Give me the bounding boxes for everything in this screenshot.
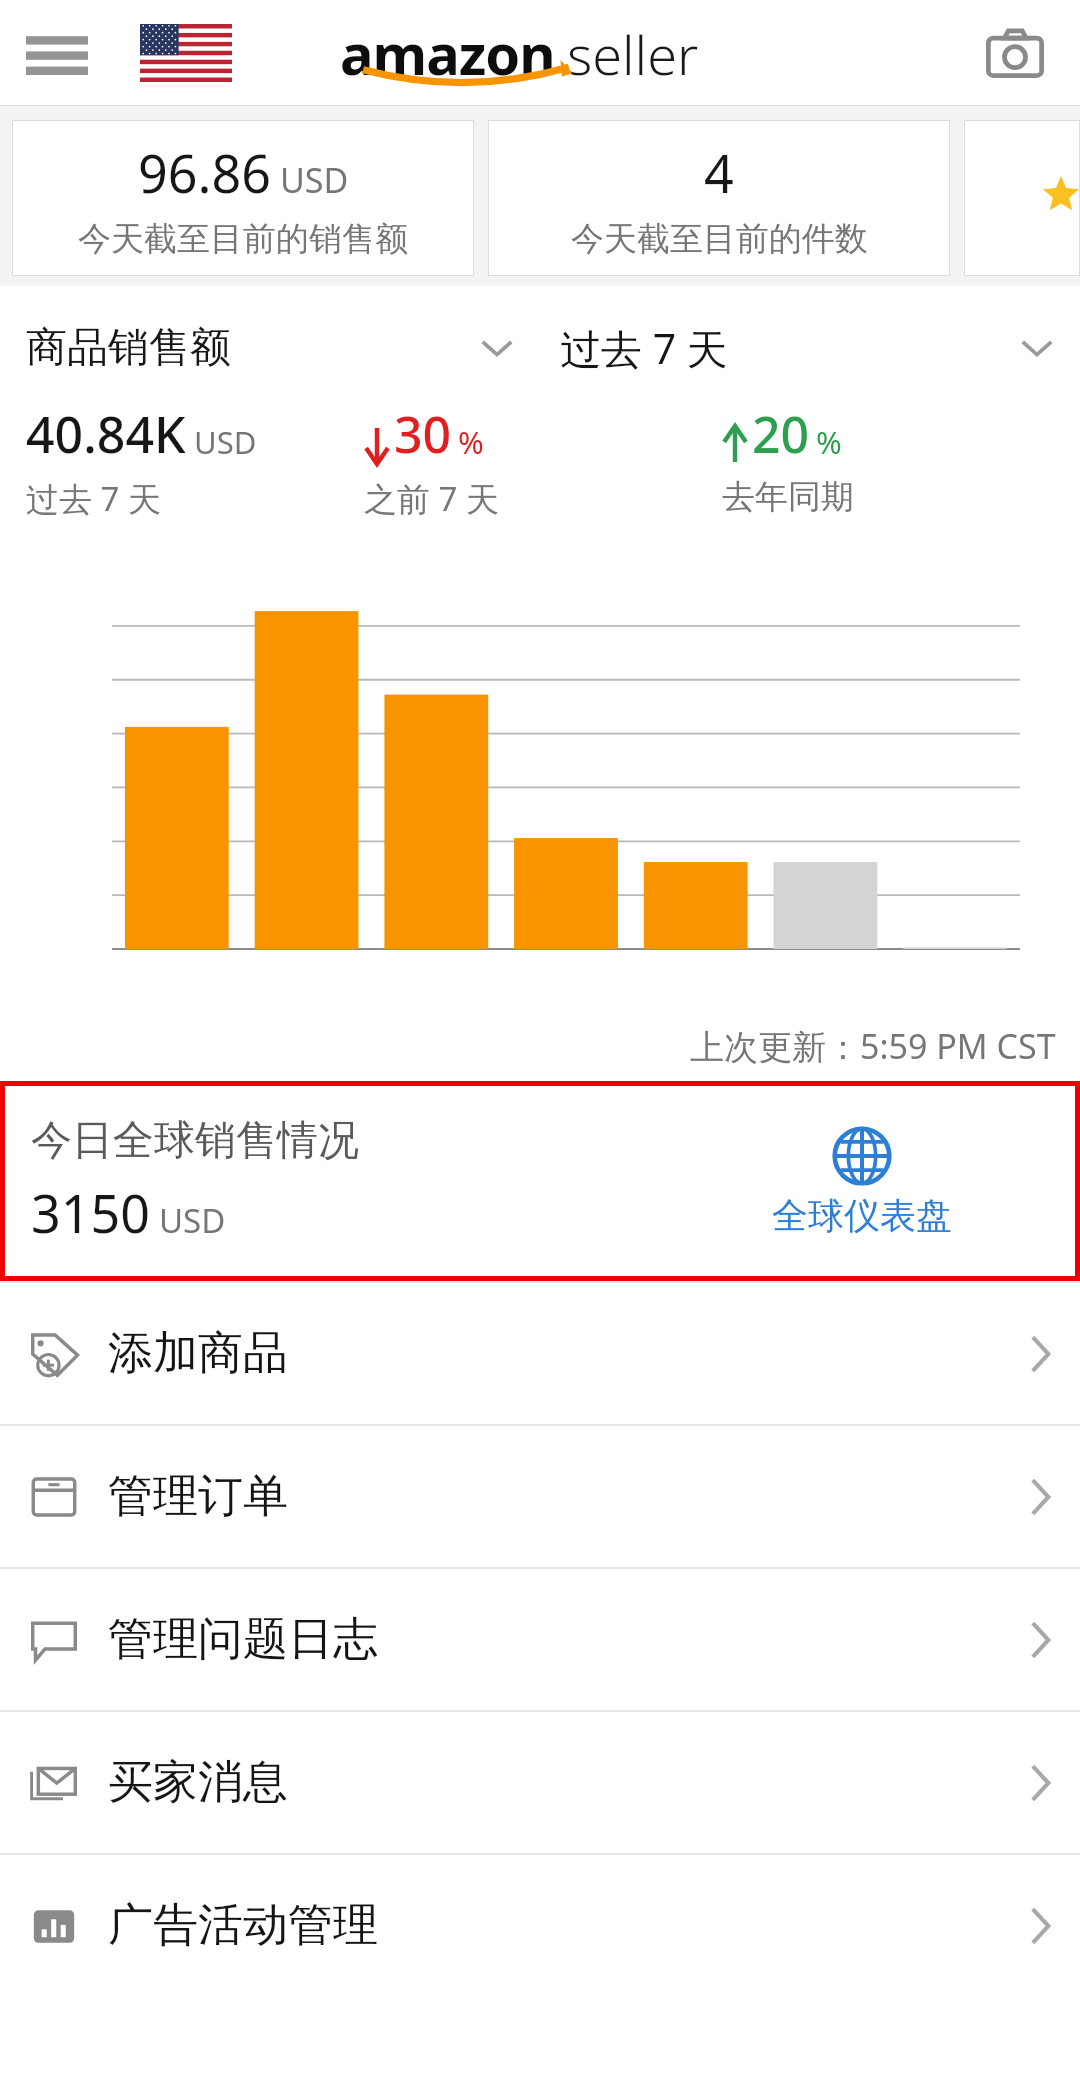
staticText: 30 [394,400,452,468]
staticText: 广告活动管理 [108,1897,378,1954]
staticText: 商品销售额 [26,322,231,374]
button[interactable]: Feedback rating [964,120,1080,276]
staticText: 今日全球销售情况 [31,1115,359,1167]
staticText: USD [194,421,257,463]
staticText: 全球仪表盘 [772,1193,952,1238]
button[interactable]: 4 [488,120,950,276]
staticText: 4 [704,137,734,208]
staticText: 过去 7 天 [560,320,728,376]
staticText: 今天截至目前的件数 [571,218,868,260]
staticText: seller [567,17,699,91]
button[interactable]: 全球仪表盘 [764,1117,960,1246]
staticText: 过去 7 天 [26,476,162,521]
button[interactable]: amazon seller [340,11,760,95]
staticText: % [458,421,484,463]
button[interactable]: 广告活动管理 [0,1855,1080,1996]
staticText: % [816,421,842,463]
button[interactable]: 管理问题日志 [0,1569,1080,1710]
button[interactable]: 添加商品 [0,1283,1080,1424]
staticText: 今天截至目前的销售额 [78,218,408,260]
button[interactable]: Scan product with camera [972,13,1058,93]
staticText: 之前 7 天 [364,476,500,521]
staticText: 20 [752,400,810,468]
staticText: 添加商品 [108,1325,288,1382]
staticText: 买家消息 [108,1754,288,1811]
button[interactable]: 96.86 [12,120,474,276]
button[interactable]: Marketplace United States [138,20,234,86]
button[interactable]: 过去 7 天 [540,302,1080,394]
button[interactable]: Menu [18,18,96,88]
button[interactable]: 买家消息 [0,1712,1080,1853]
button[interactable]: 管理订单 [0,1426,1080,1567]
staticText: 上次更新：5:59 PM CST [690,1023,1056,1069]
staticText: amazon [340,15,555,91]
staticText: 40.84K [26,400,186,468]
staticText: 管理订单 [108,1468,288,1525]
staticText: 96.86 [138,137,271,208]
staticText: USD [280,157,349,203]
staticText: 管理问题日志 [108,1611,378,1668]
staticText: USD [159,1198,226,1243]
staticText: 3150 [31,1177,150,1248]
staticText: 去年同期 [722,476,854,518]
button[interactable]: 商品销售额 [0,302,540,394]
